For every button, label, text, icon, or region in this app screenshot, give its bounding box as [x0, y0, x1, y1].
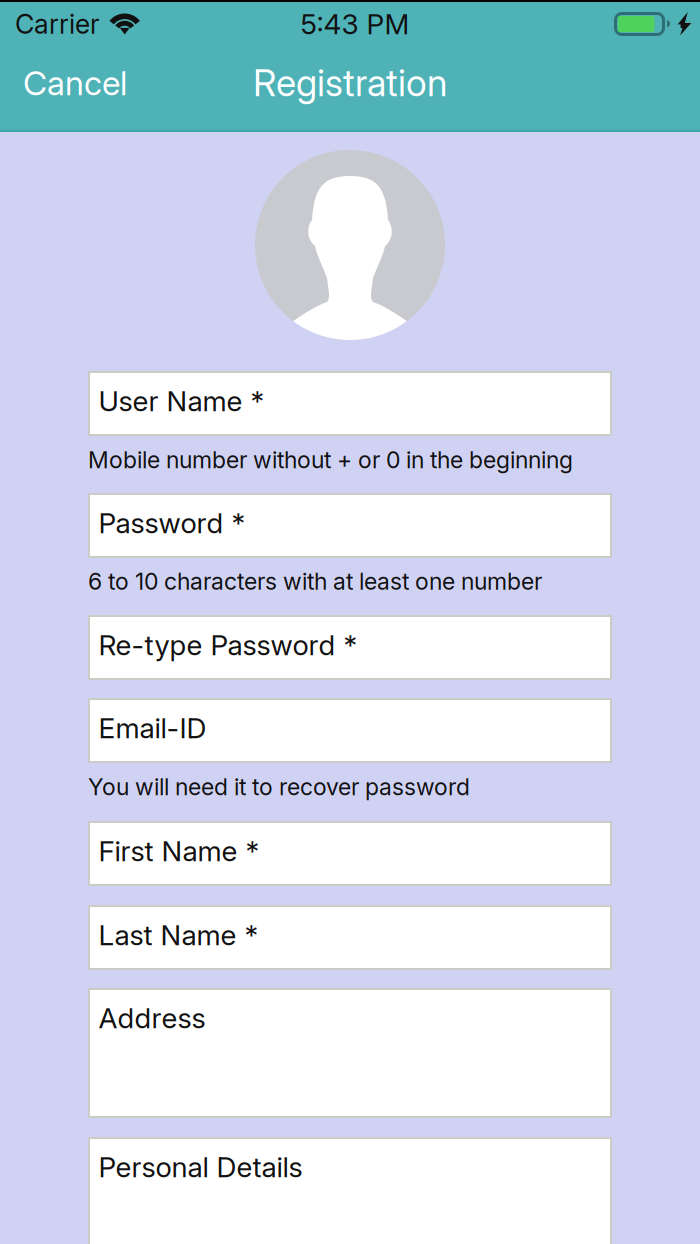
staticText: User Name * [98, 384, 264, 418]
staticText: Address [98, 1001, 205, 1035]
staticText: Password * [98, 506, 245, 540]
button[interactable]: Personal Details [88, 1137, 612, 1244]
button[interactable]: Address [88, 988, 612, 1118]
staticText: Registration [253, 61, 447, 105]
staticText: 6 to 10 characters with at least one num… [88, 567, 542, 595]
button[interactable]: User Name * [88, 371, 612, 436]
button[interactable]: Cancel [23, 63, 127, 103]
button[interactable]: Email-ID [88, 698, 612, 763]
staticText: Last Name * [98, 918, 258, 952]
staticText: Carrier [15, 8, 100, 40]
staticText: Email-ID [98, 711, 206, 745]
staticText: Mobile number without + or 0 in the begi… [88, 446, 573, 474]
staticText: Cancel [23, 63, 127, 103]
button[interactable]: Last Name * [88, 905, 612, 970]
staticText: You will need it to recover password [88, 773, 470, 801]
staticText: Re-type Password * [98, 628, 357, 662]
button[interactable]: Re-type Password * [88, 615, 612, 680]
staticText: Personal Details [98, 1150, 302, 1184]
staticText: 5:43 PM [300, 7, 409, 41]
staticText: First Name * [98, 834, 259, 868]
button[interactable]: Password * [88, 493, 612, 558]
button[interactable]: First Name * [88, 821, 612, 886]
